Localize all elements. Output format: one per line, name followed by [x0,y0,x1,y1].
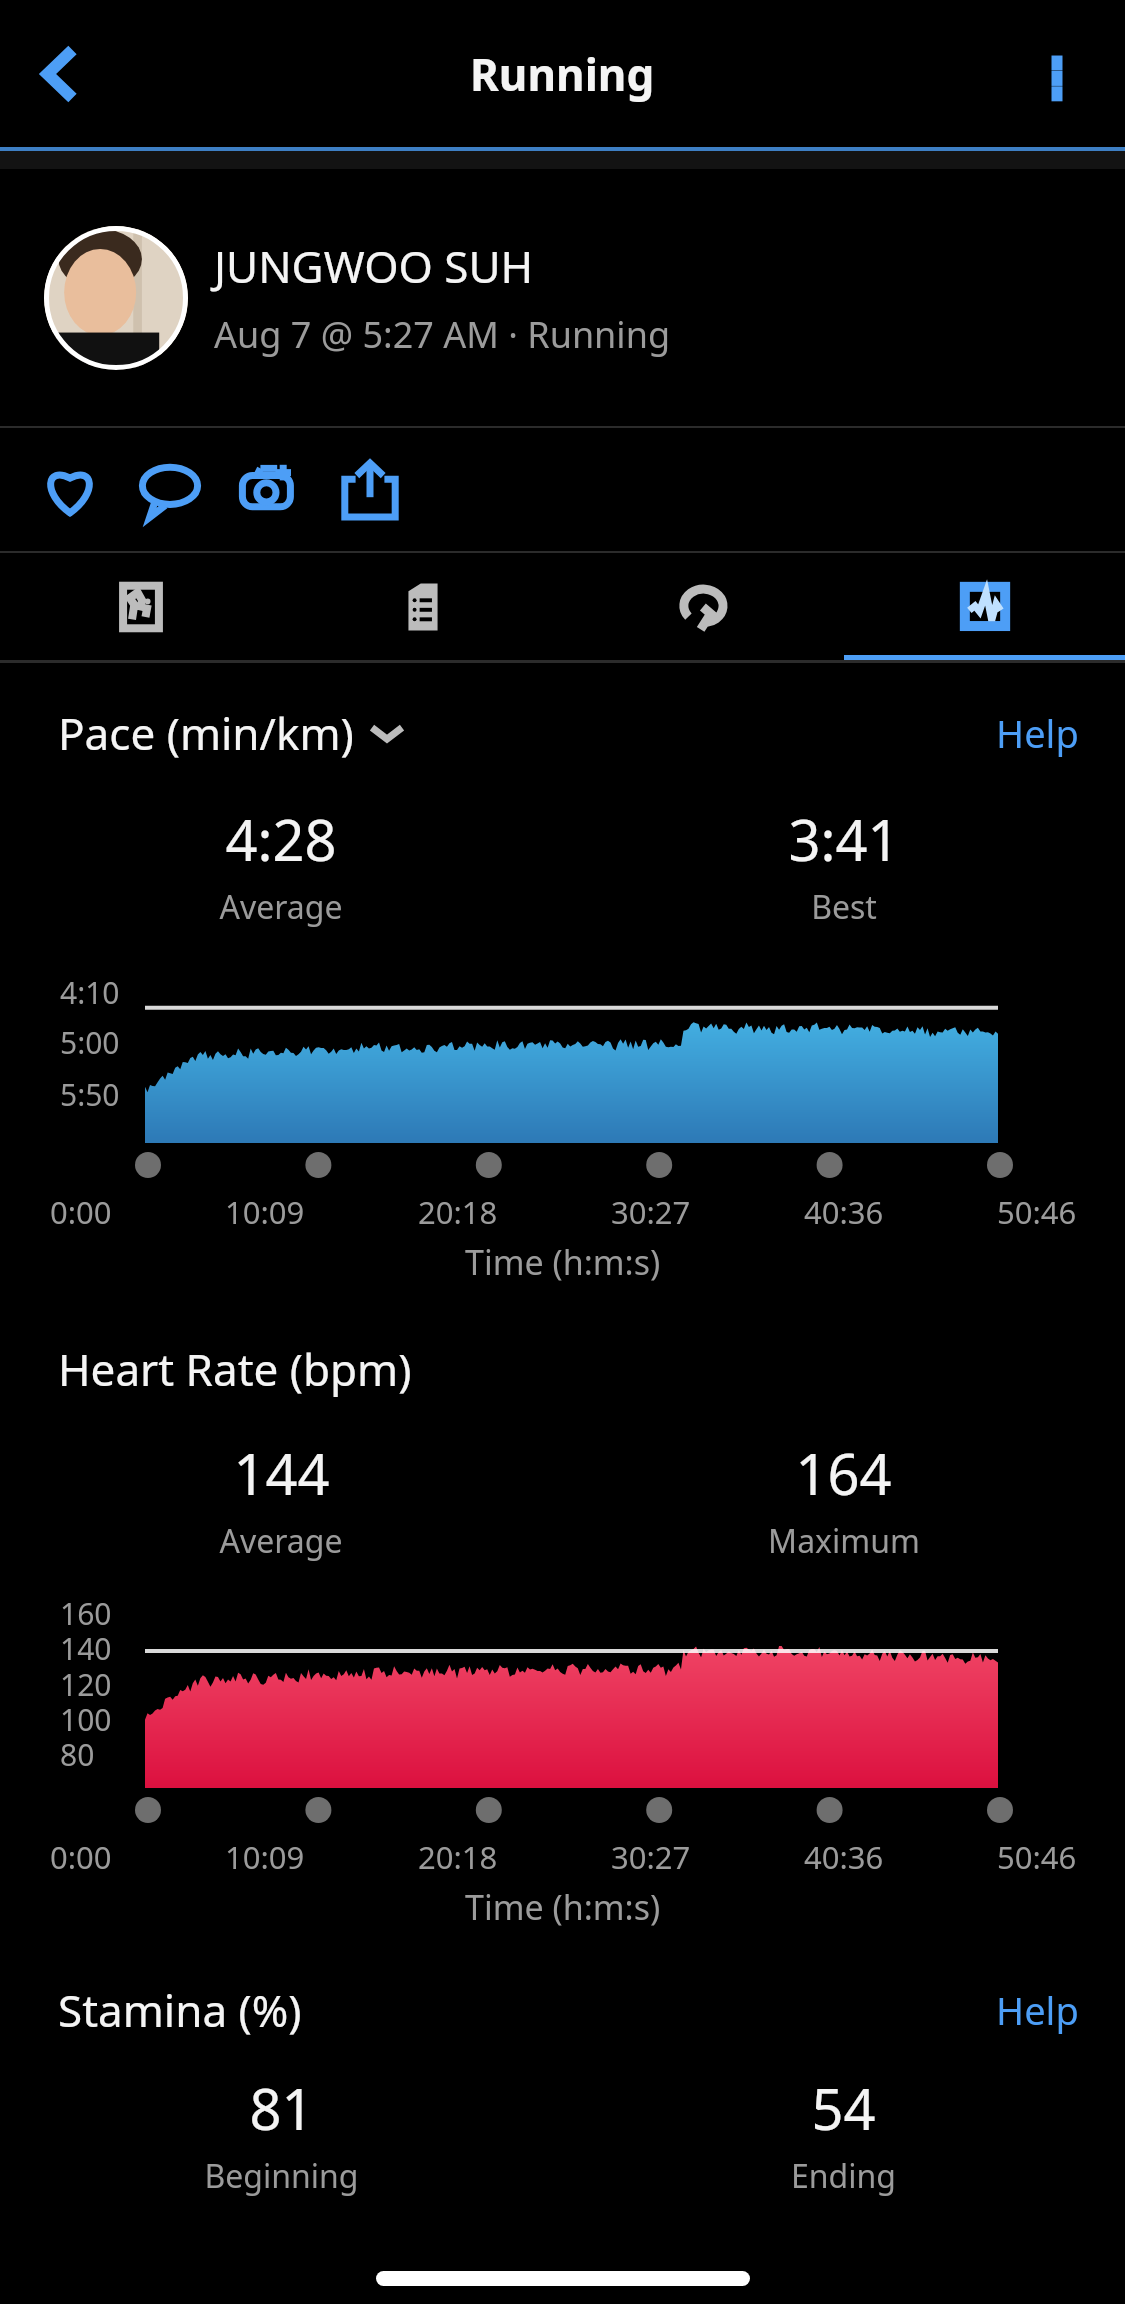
staticText: Time (h:m:s) [465,1239,661,1285]
staticText: 100 [60,1699,112,1740]
staticText: Ending [791,2154,896,2198]
staticText: 5:50 [60,1074,120,1115]
staticText: 20:18 [418,1836,498,1878]
staticText: 140 [60,1628,112,1669]
staticText: 160 [60,1593,112,1634]
button[interactable]: Laps [563,553,844,660]
staticText: Average [219,1519,343,1563]
staticText: Best [811,885,877,929]
staticText: 30:27 [611,1191,691,1233]
staticText: 120 [60,1664,112,1705]
button[interactable]: Comment [120,440,220,540]
button[interactable]: Map [0,553,282,660]
staticText: 30:27 [611,1836,691,1878]
staticText: 50:46 [997,1191,1077,1233]
button[interactable]: More options [1009,26,1105,122]
staticText: 50:46 [997,1836,1077,1878]
staticText: 40:36 [804,1836,884,1878]
staticText: 10:09 [225,1836,305,1878]
button[interactable]: JUNGWOO SUH [0,169,1125,426]
staticText: Maximum [768,1519,920,1563]
staticText: Average [219,885,343,929]
button[interactable]: Help [996,707,1079,759]
button[interactable]: Share [320,440,420,540]
staticText: 164 [795,1435,892,1511]
staticText: 0:00 [50,1836,112,1878]
button[interactable]: Help [996,1984,1079,2036]
button[interactable]: Back [12,26,108,122]
staticText: 81 [249,2070,314,2146]
staticText: Beginning [204,2154,359,2198]
staticText: JUNGWOO SUH [214,236,534,296]
button[interactable]: Add photo [220,440,320,540]
staticText: Stamina (%) [58,1980,302,2040]
button[interactable]: Pace (min/km) [58,703,402,763]
button[interactable]: Splits [282,553,563,660]
staticText: Running [470,44,655,104]
staticText: 4:10 [60,972,120,1013]
staticText: Pace (min/km) [58,703,354,763]
staticText: 40:36 [804,1191,884,1233]
staticText: 10:09 [225,1191,305,1233]
staticText: 4:28 [225,801,337,877]
button[interactable]: Graphs [844,553,1125,660]
staticText: Aug 7 @ 5:27 AM · Running [214,310,671,359]
staticText: 5:00 [60,1022,120,1063]
staticText: 80 [60,1734,95,1775]
button[interactable]: Like [20,440,120,540]
staticText: 3:41 [788,801,900,877]
staticText: Heart Rate (bpm) [58,1339,412,1399]
staticText: Time (h:m:s) [465,1884,661,1930]
staticText: 0:00 [50,1191,112,1233]
staticText: 144 [233,1435,330,1511]
staticText: 54 [811,2070,876,2146]
staticText: 20:18 [418,1191,498,1233]
